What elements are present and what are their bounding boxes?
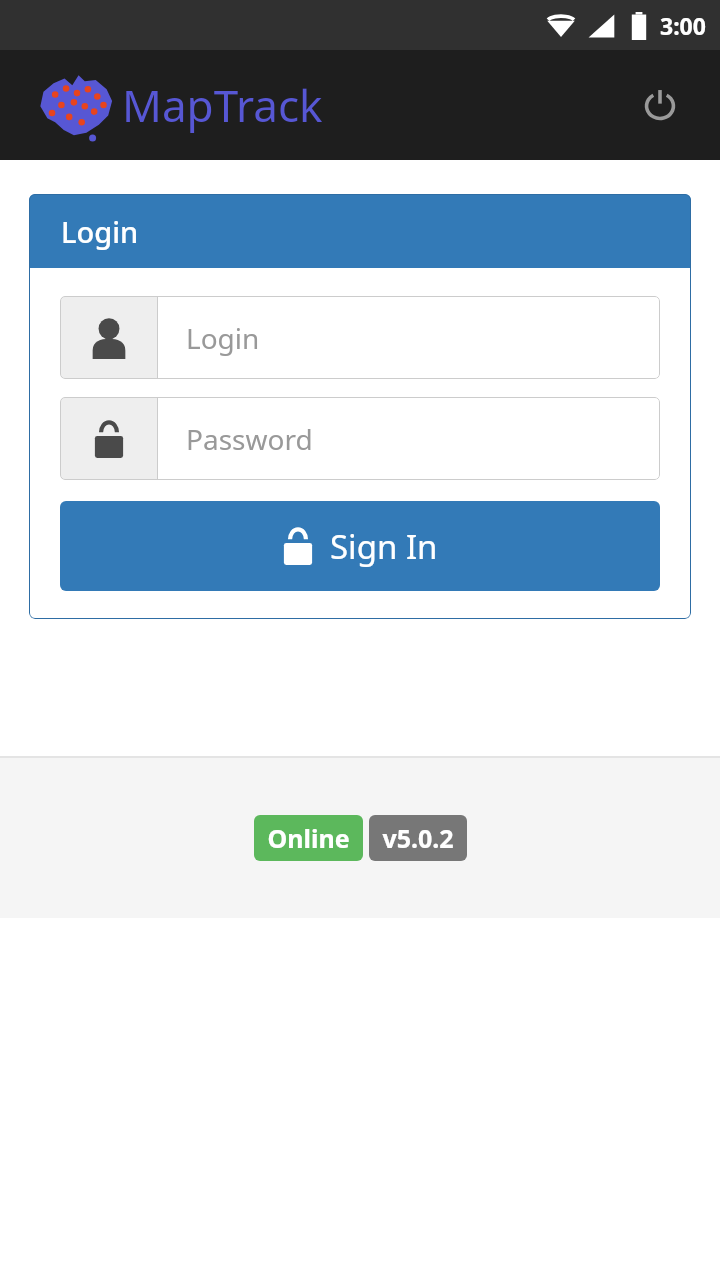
button[interactable]: Sign In [60, 501, 660, 591]
button[interactable]: Power / Log out [632, 77, 688, 133]
staticText: Online [267, 821, 350, 855]
button[interactable]: v5.0.2 [369, 815, 467, 861]
staticText: Password [186, 420, 313, 458]
button[interactable]: Online [254, 815, 363, 861]
staticText: Login [186, 319, 260, 357]
staticText: MapTrack [122, 75, 323, 135]
staticText: v5.0.2 [382, 821, 454, 855]
button[interactable]: Password [60, 397, 660, 480]
staticText: 3:00 [660, 10, 706, 41]
button[interactable]: Login [60, 296, 660, 379]
staticText: Sign In [330, 524, 438, 569]
staticText: Login [61, 212, 139, 251]
